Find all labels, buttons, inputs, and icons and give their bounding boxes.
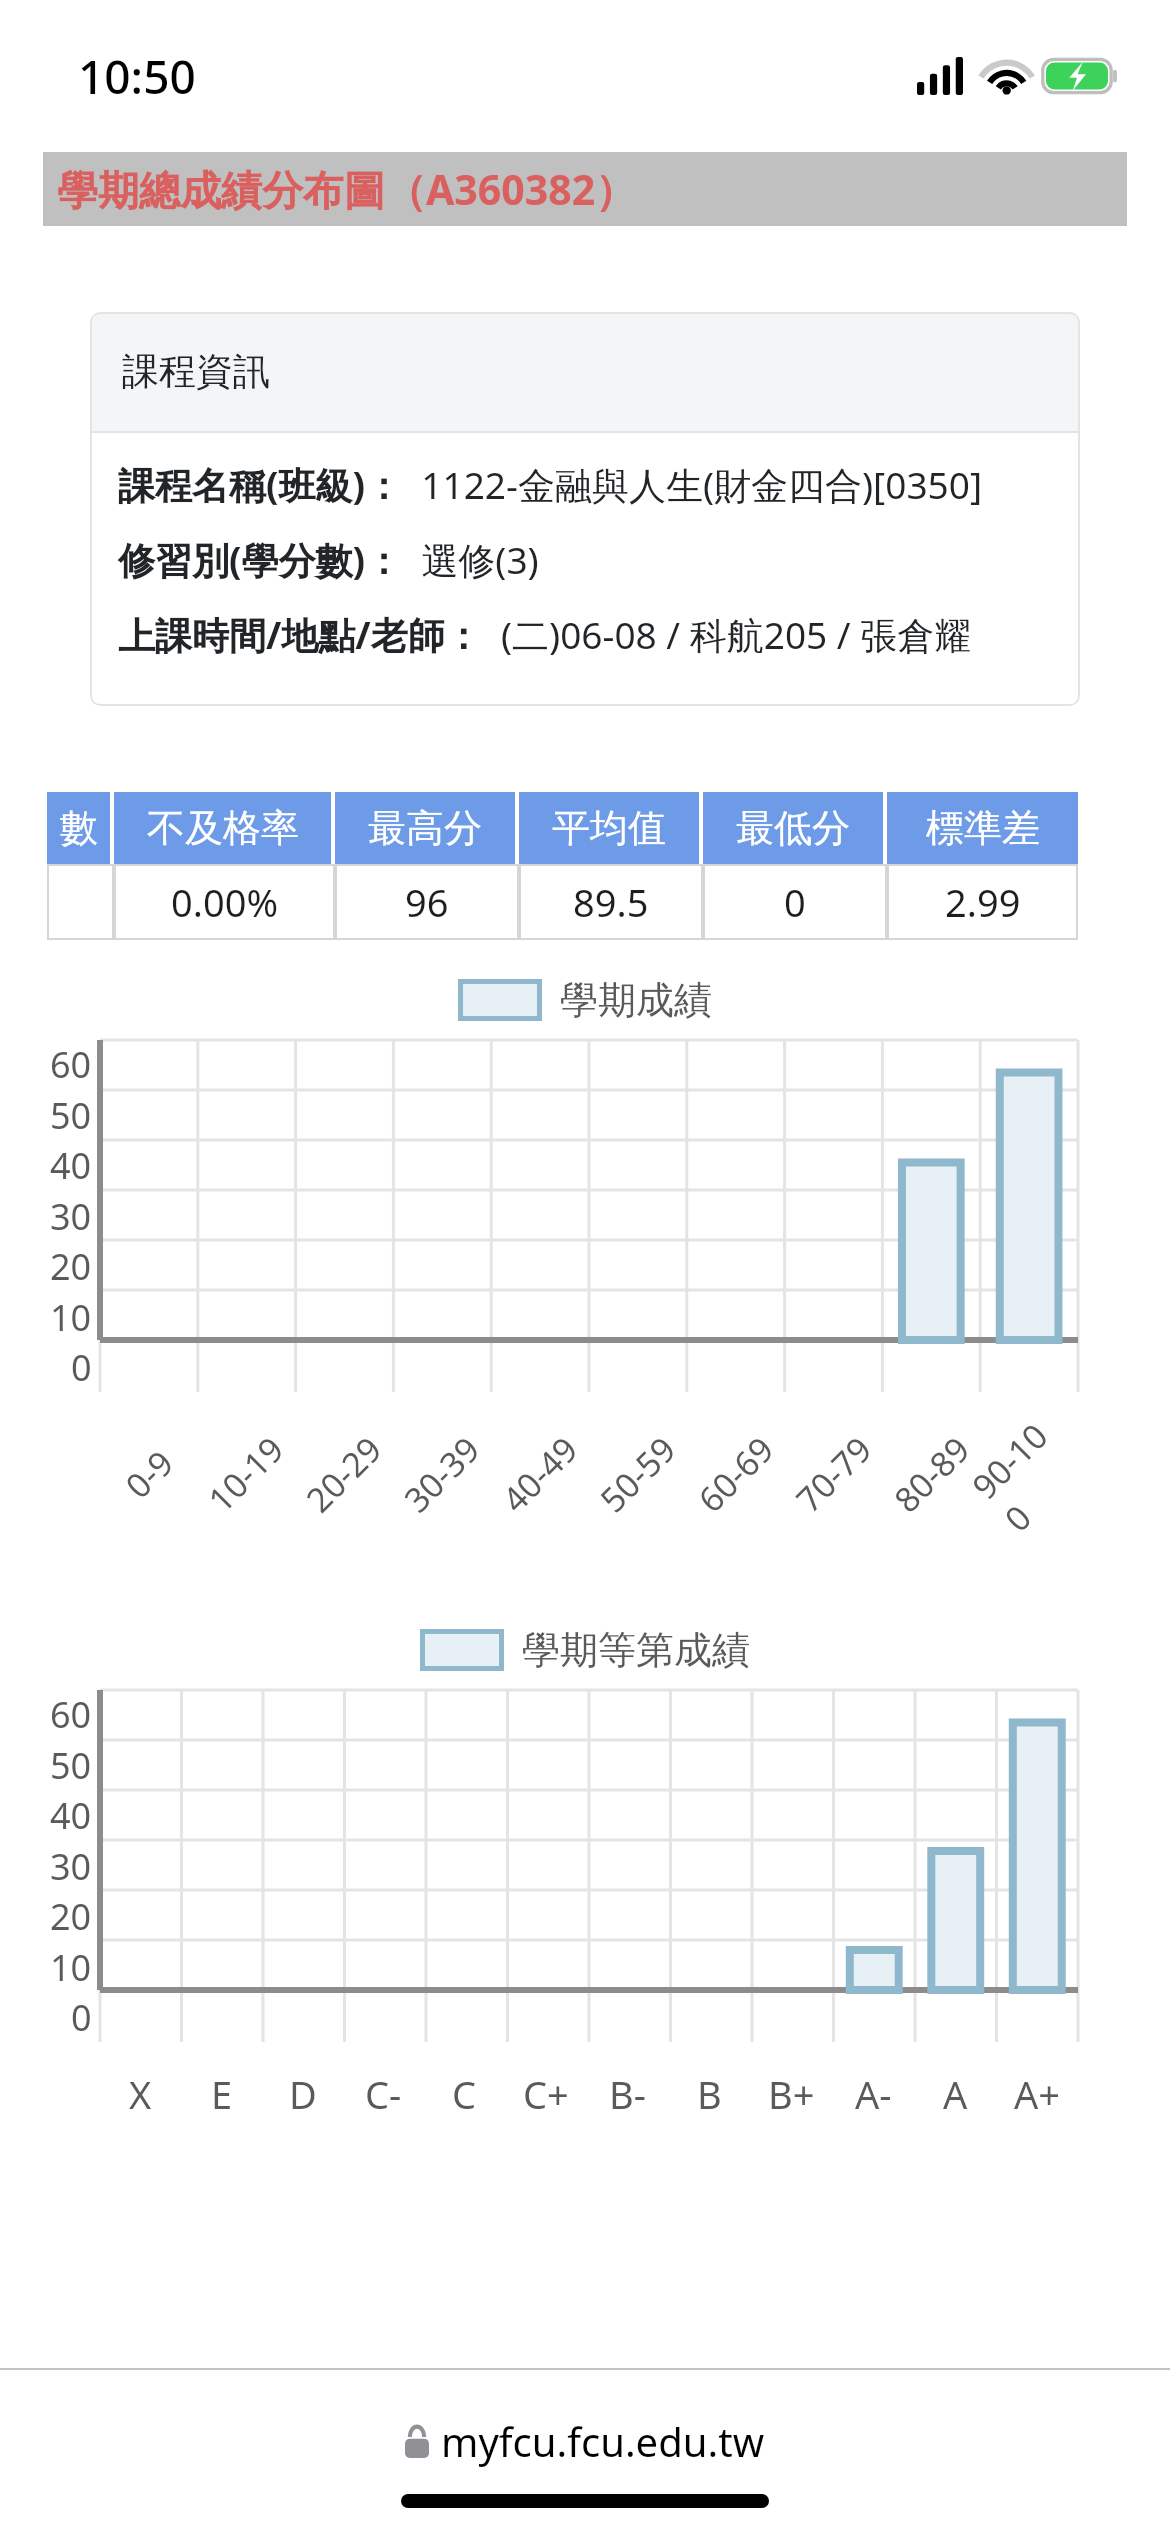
staticText: 10	[50, 1943, 92, 1992]
staticText: 60	[50, 1040, 92, 1089]
button[interactable]: 課程資訊	[90, 312, 1080, 706]
staticText: 不及格率	[147, 804, 299, 852]
staticText: 10	[50, 1293, 92, 1342]
staticText: 90-100	[962, 1407, 1096, 1541]
staticText: B	[697, 2068, 722, 2120]
staticText: 60-69	[688, 1426, 783, 1522]
staticText: 30	[50, 1192, 92, 1241]
staticText: 0.00%	[171, 876, 278, 928]
staticText: E	[211, 2068, 233, 2120]
staticText: 20	[50, 1892, 92, 1941]
other: Status icons	[917, 57, 1112, 95]
staticText: 80-89	[884, 1426, 979, 1522]
staticText: D	[289, 2068, 317, 2120]
staticText: C-	[365, 2068, 402, 2120]
staticText: 50	[50, 1091, 92, 1140]
staticText: B-	[609, 2068, 646, 2120]
staticText: 標準差	[926, 804, 1040, 852]
staticText: 60	[50, 1690, 92, 1739]
staticText: 學期總成績分布圖（A360382）	[57, 161, 637, 217]
staticText: 10-19	[198, 1426, 293, 1522]
staticText: A	[943, 2068, 968, 2120]
button[interactable]: 學期總成績分布圖（A360382）	[43, 152, 1127, 226]
staticText: 20-29	[296, 1426, 391, 1522]
staticText: B+	[768, 2068, 815, 2120]
staticText: 40	[50, 1791, 92, 1840]
staticText: 2.99	[945, 876, 1021, 928]
staticText: 20	[50, 1242, 92, 1291]
staticText: 0	[784, 876, 806, 928]
staticText: C	[452, 2068, 477, 2120]
staticText: 30-39	[394, 1426, 489, 1522]
staticText: 課程名稱(班級)： 1122-金融與人生(財金四合)[0350]	[118, 459, 983, 510]
staticText: 學期等第成績	[522, 1626, 750, 1674]
button[interactable]: myfcu.fcu.edu.tw	[381, 2406, 789, 2476]
staticText: 0	[71, 1343, 92, 1392]
staticText: C+	[523, 2068, 569, 2120]
staticText: myfcu.fcu.edu.tw	[441, 2414, 765, 2468]
staticText: 50-59	[590, 1426, 685, 1522]
staticText: 學期成績	[560, 976, 712, 1024]
staticText: 30	[50, 1842, 92, 1891]
staticText: 40	[50, 1141, 92, 1190]
staticText: 0-9	[115, 1440, 183, 1508]
staticText: 70-79	[786, 1426, 881, 1522]
staticText: 89.5	[573, 876, 649, 928]
staticText: X	[129, 2068, 152, 2120]
staticText: A+	[1014, 2068, 1061, 2120]
staticText: 最低分	[736, 804, 850, 852]
staticText: 10:50	[78, 45, 196, 108]
staticText: 上課時間/地點/老師： (二)06-08 / 科航205 / 張倉耀	[118, 609, 972, 660]
staticText: A-	[855, 2068, 892, 2120]
staticText: 40-49	[492, 1426, 587, 1522]
staticText: 0	[71, 1993, 92, 2042]
staticText: 課程資訊	[122, 348, 270, 395]
staticText: 平均值	[552, 804, 666, 852]
staticText: 96	[405, 876, 449, 928]
staticText: 最高分	[368, 804, 482, 852]
staticText: 數	[60, 804, 98, 852]
staticText: 50	[50, 1741, 92, 1790]
staticText: 修習別(學分數)： 選修(3)	[118, 534, 539, 585]
